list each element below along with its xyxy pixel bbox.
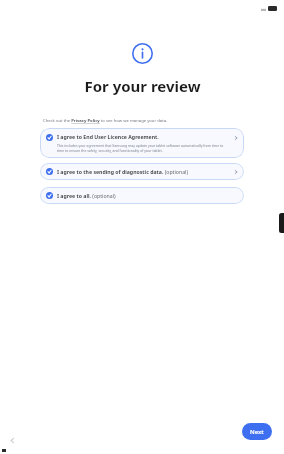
staticText: I agree to the sending of diagnostic dat…	[57, 168, 188, 175]
button[interactable]: I agree to End User Licence Agreement.	[40, 128, 244, 158]
staticText: I agree to End User Licence Agreement.	[57, 133, 159, 140]
staticText: This includes your agreement that Samsun…	[57, 143, 229, 153]
button[interactable]: Back	[7, 435, 17, 445]
staticText: For your review	[84, 76, 201, 96]
staticText: Check out the Privacy Policy to see how …	[43, 118, 168, 124]
button[interactable]: I agree to all. (optional)	[40, 187, 244, 204]
staticText: Next	[250, 428, 264, 436]
staticText: I agree to all. (optional)	[57, 192, 116, 199]
button[interactable]: I agree to the sending of diagnostic dat…	[40, 163, 244, 180]
button[interactable]: Next	[242, 423, 272, 440]
